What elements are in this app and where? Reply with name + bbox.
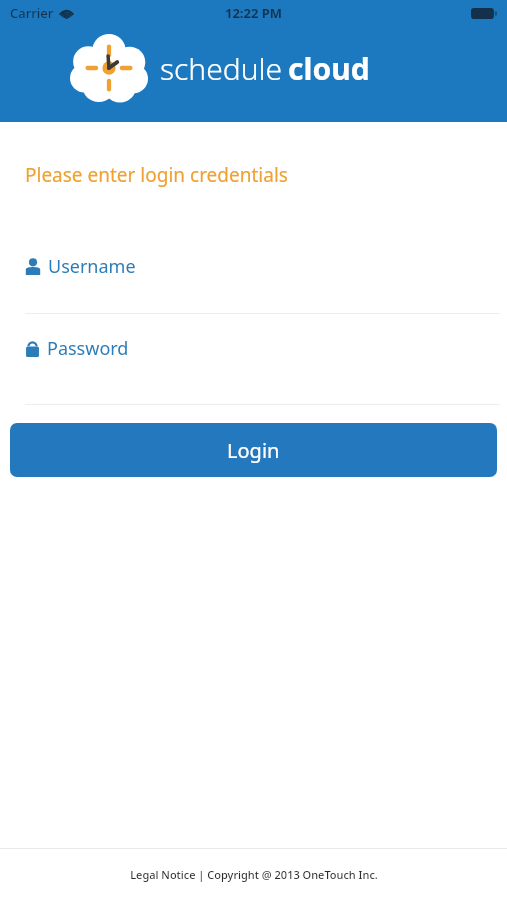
- other: Password: [25, 339, 40, 357]
- other: schedulecloud logo: [70, 32, 148, 104]
- staticText: Username: [48, 254, 136, 279]
- button[interactable]: Username: [0, 244, 507, 288]
- staticText: Carrier: [10, 4, 54, 22]
- staticText: Login: [227, 437, 280, 464]
- staticText: Please enter login credentials: [25, 162, 288, 188]
- staticText: schedule: [160, 48, 283, 89]
- other: Wi-Fi: [59, 8, 74, 19]
- button[interactable]: Password: [0, 326, 507, 370]
- staticText: Password: [47, 336, 129, 361]
- staticText: Legal Notice | Copyright @ 2013 OneTouch…: [130, 867, 378, 882]
- other: Battery: [471, 8, 497, 19]
- button[interactable]: Login: [10, 423, 497, 477]
- staticText: cloud: [288, 48, 370, 89]
- other: Username: [25, 258, 41, 275]
- staticText: 12:22 PM: [225, 4, 283, 22]
